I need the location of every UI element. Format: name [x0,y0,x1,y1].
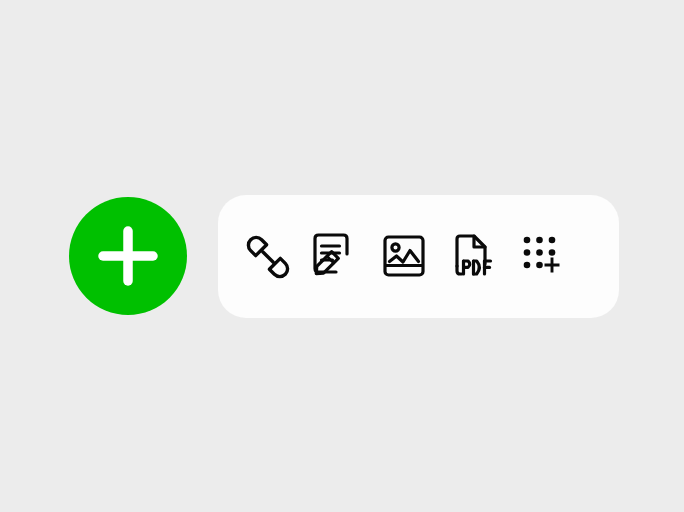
button[interactable]: Insert image [380,231,432,283]
button[interactable]: Insert link [242,231,294,283]
button[interactable]: More options [518,231,570,283]
button[interactable]: Add [69,197,187,315]
button[interactable]: Insert note [311,231,363,283]
button[interactable]: Insert PDF [449,231,501,283]
